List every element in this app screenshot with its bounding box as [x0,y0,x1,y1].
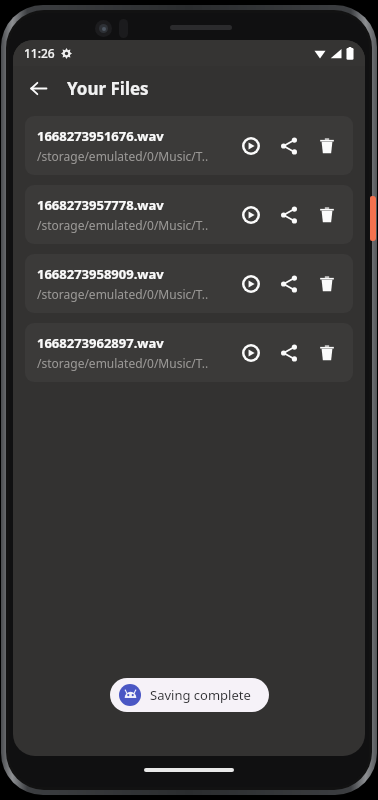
staticText: 1668273957778.wav [37,196,164,214]
button[interactable]: Share [273,130,305,162]
staticText: Your Files [67,77,149,100]
button[interactable]: 1668273962897.wav [25,323,353,382]
staticText: /storage/emulated/0/Music/T.. [37,217,209,233]
button[interactable]: Delete [311,337,343,369]
button[interactable]: Play [235,199,267,231]
button[interactable]: Share [273,199,305,231]
button[interactable]: Back [19,69,57,107]
staticText: 1668273962897.wav [37,334,164,352]
staticText: 11:26 [24,45,55,61]
staticText: Saving complete [150,686,251,704]
button[interactable]: Share [273,268,305,300]
button[interactable]: Play [235,337,267,369]
button[interactable]: Saving complete [110,678,269,712]
staticText: 1668273951676.wav [37,127,164,145]
button[interactable]: Play [235,130,267,162]
button[interactable]: 1668273957778.wav [25,185,353,244]
button[interactable]: 1668273958909.wav [25,254,353,313]
button[interactable]: Delete [311,130,343,162]
staticText: /storage/emulated/0/Music/T.. [37,286,209,302]
button[interactable]: Delete [311,268,343,300]
button[interactable]: Share [273,337,305,369]
button[interactable]: Delete [311,199,343,231]
button[interactable]: Play [235,268,267,300]
staticText: /storage/emulated/0/Music/T.. [37,355,209,371]
staticText: /storage/emulated/0/Music/T.. [37,148,209,164]
staticText: 1668273958909.wav [37,265,164,283]
button[interactable]: 1668273951676.wav [25,116,353,175]
